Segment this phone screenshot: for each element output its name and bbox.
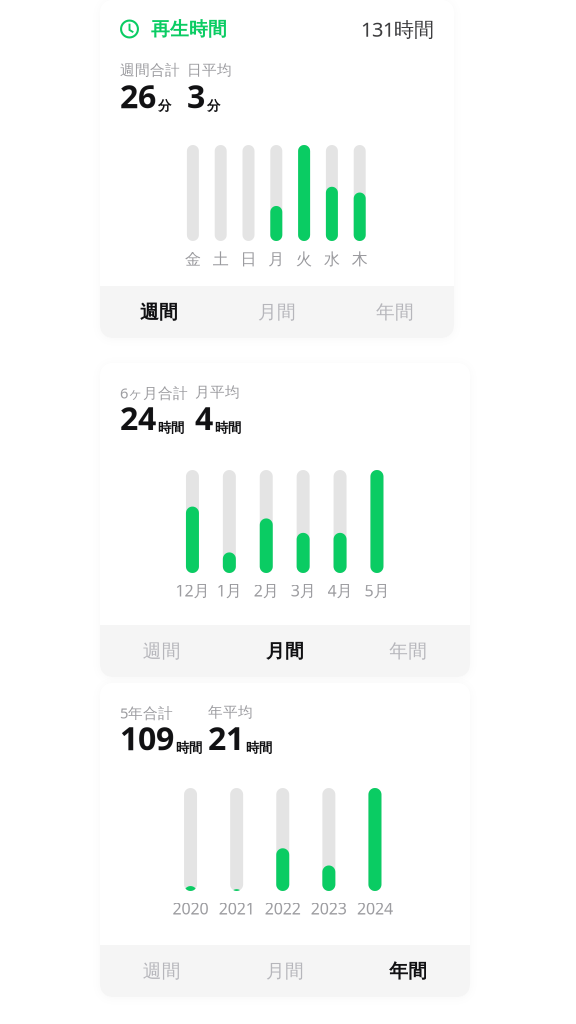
staticText: 2021 xyxy=(219,898,255,919)
staticText: 5月 xyxy=(364,580,389,601)
staticText: 週間 xyxy=(143,959,181,982)
staticText: 水 xyxy=(324,249,340,269)
button[interactable]: 週間 xyxy=(100,625,223,677)
staticText: 月間 xyxy=(266,959,304,982)
staticText: 年間 xyxy=(389,639,427,662)
staticText: 2024 xyxy=(357,898,393,919)
staticText: 金 xyxy=(185,249,201,269)
staticText: 日 xyxy=(240,249,256,269)
staticText: 時間 xyxy=(176,740,202,756)
staticText: 4 xyxy=(195,396,213,439)
staticText: 4月 xyxy=(328,580,353,601)
staticText: 月 xyxy=(268,249,284,269)
staticText: 24 xyxy=(120,396,156,439)
staticText: 時間 xyxy=(158,420,184,436)
staticText: 土 xyxy=(213,249,229,269)
staticText: 再生時間 xyxy=(139,17,227,40)
staticText: 年平均 xyxy=(208,703,253,721)
staticText: 木 xyxy=(352,249,368,269)
staticText: 週間 xyxy=(140,300,178,323)
staticText: 分 xyxy=(207,98,220,114)
button[interactable]: 年間 xyxy=(336,286,454,338)
staticText: 5年合計 xyxy=(120,703,173,722)
staticText: 26 xyxy=(120,74,156,117)
staticText: 分 xyxy=(158,98,171,114)
staticText: 2022 xyxy=(265,898,301,919)
staticText: 2月 xyxy=(254,580,279,601)
staticText: 年間 xyxy=(389,959,427,982)
staticText: 2023 xyxy=(311,898,347,919)
staticText: 109 xyxy=(120,716,174,759)
staticText: 6ヶ月合計 xyxy=(120,383,188,402)
staticText: 131時間 xyxy=(361,16,434,42)
staticText: 3月 xyxy=(291,580,316,601)
staticText: 2020 xyxy=(173,898,209,919)
button[interactable]: 週間 xyxy=(100,945,223,997)
staticText: 時間 xyxy=(246,740,272,756)
staticText: 12月 xyxy=(175,580,209,601)
staticText: 21 xyxy=(208,716,244,759)
button[interactable]: 月間 xyxy=(218,286,336,338)
staticText: 日平均 xyxy=(187,61,232,79)
button[interactable]: 年間 xyxy=(347,945,470,997)
staticText: 週間合計 xyxy=(120,61,180,79)
staticText: 週間 xyxy=(143,639,181,662)
staticText: 3 xyxy=(187,74,205,117)
staticText: 月平均 xyxy=(195,383,240,401)
staticText: 月間 xyxy=(258,300,296,323)
staticText: 火 xyxy=(296,249,312,269)
button[interactable]: 月間 xyxy=(223,625,347,677)
button[interactable]: 年間 xyxy=(347,625,470,677)
staticText: 月間 xyxy=(266,639,304,662)
staticText: 時間 xyxy=(215,420,241,436)
staticText: 年間 xyxy=(376,300,414,323)
staticText: 1月 xyxy=(217,580,242,601)
button[interactable]: 週間 xyxy=(100,286,218,338)
button[interactable]: 月間 xyxy=(223,945,347,997)
